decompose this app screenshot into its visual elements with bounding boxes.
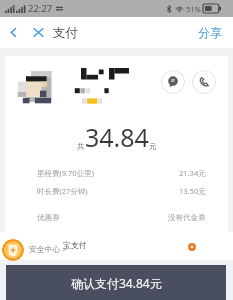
button[interactable]: 确认支付34.84元	[6, 265, 226, 300]
staticText: 时长费(27分钟)	[37, 186, 88, 196]
button[interactable]: Call	[192, 70, 216, 94]
button[interactable]: 分享	[184, 17, 233, 48]
button[interactable]: Message	[161, 70, 185, 94]
staticText: 分享	[198, 25, 222, 40]
button[interactable]: Close	[27, 17, 50, 48]
button[interactable]: Alipay selected	[188, 243, 196, 251]
staticText: 没有代金券	[168, 213, 206, 222]
button[interactable]: 安全中心 >	[29, 244, 67, 255]
staticText: 宝支付	[63, 240, 87, 250]
button[interactable]: Security center	[2, 239, 24, 261]
staticText: 支付	[53, 25, 78, 41]
button[interactable]: Back	[0, 17, 27, 48]
button[interactable]: 优惠券	[5, 213, 228, 222]
staticText: 51%	[186, 4, 201, 14]
staticText: 13.50元	[179, 186, 206, 196]
staticText: 确认支付34.84元	[71, 275, 162, 291]
staticText: 元	[149, 142, 157, 151]
staticText: 里程费(9.70公里)	[37, 168, 94, 178]
staticText: 21.34元	[179, 168, 206, 178]
staticText: 共	[77, 142, 85, 151]
staticText: 22:27	[28, 2, 53, 15]
staticText: 优惠券	[37, 213, 60, 222]
staticText: 安全中心 >	[29, 244, 67, 255]
staticText: 34.84	[85, 120, 149, 154]
